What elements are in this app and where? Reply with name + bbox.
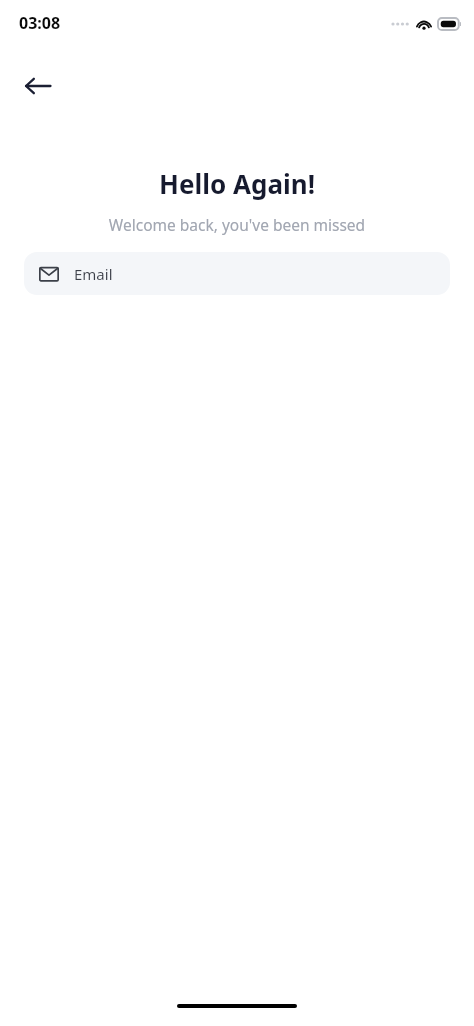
staticText: Welcome back, you've been missed (64, 214, 410, 235)
button[interactable]: Back (14, 62, 62, 110)
staticText: Hello Again! (0, 166, 474, 201)
button[interactable]: Email (24, 252, 450, 295)
staticText: Email (74, 264, 113, 284)
staticText: 03:08 (19, 12, 61, 34)
